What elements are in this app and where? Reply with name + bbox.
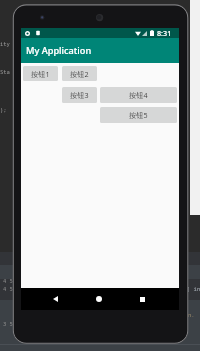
button[interactable]: 按钮5: [100, 107, 177, 123]
staticText: My Application: [26, 44, 92, 57]
staticText: Sta: [0, 68, 10, 75]
button[interactable]: 按钮1: [23, 66, 58, 81]
staticText: 按钮4: [129, 90, 148, 100]
staticText: ity: [0, 40, 10, 47]
staticText: 4 5: [3, 285, 13, 292]
staticText: );: [0, 106, 7, 113]
staticText: 按钮3: [70, 90, 89, 100]
staticText: 按钮5: [129, 110, 148, 120]
button[interactable]: Home: [89, 289, 109, 309]
button[interactable]: My Application: [21, 38, 179, 63]
button[interactable]: 按钮2: [62, 66, 97, 81]
staticText: 按钮1: [31, 69, 50, 79]
staticText: 4 5: [3, 277, 13, 284]
button[interactable]: 按钮4: [100, 87, 177, 103]
staticText: 按钮2: [70, 69, 89, 79]
staticText: 8:31: [157, 28, 172, 38]
staticText: ] in p: [187, 285, 200, 292]
button[interactable]: Recents: [132, 289, 152, 309]
staticText: n.: [188, 311, 195, 318]
button[interactable]: 按钮3: [62, 87, 97, 103]
button[interactable]: Back: [45, 289, 65, 309]
staticText: 3 5: [3, 320, 13, 327]
